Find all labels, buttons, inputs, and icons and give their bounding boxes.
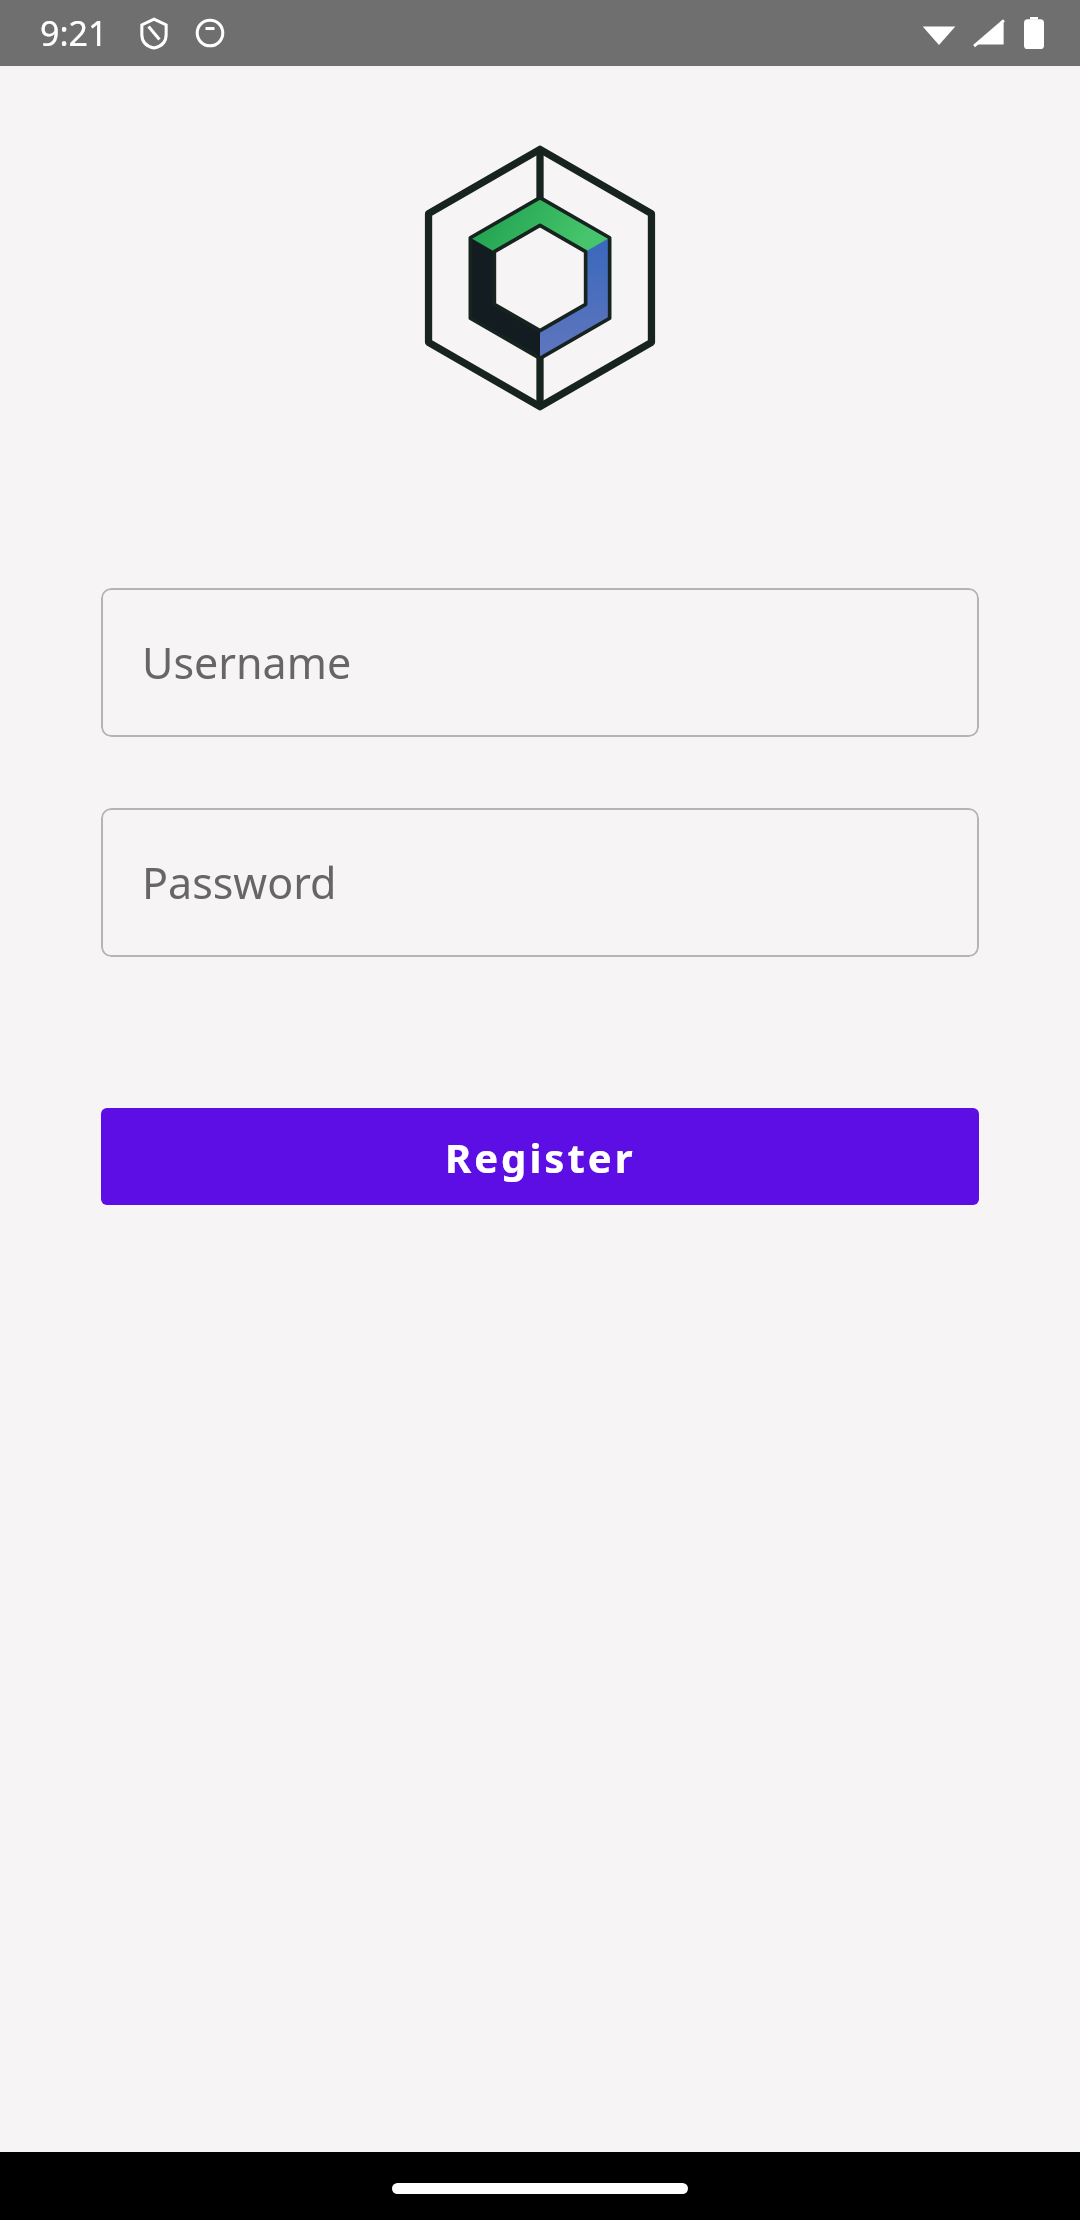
- staticText: Username: [142, 633, 352, 692]
- staticText: Register: [445, 1130, 636, 1184]
- staticText: Password: [142, 853, 337, 912]
- staticText: 9:21: [40, 10, 108, 56]
- button[interactable]: Password: [101, 808, 979, 957]
- other: Home gesture handle: [392, 2183, 688, 2194]
- button[interactable]: Username: [101, 588, 979, 737]
- other: App logo: [419, 148, 661, 408]
- button[interactable]: Register: [101, 1108, 979, 1205]
